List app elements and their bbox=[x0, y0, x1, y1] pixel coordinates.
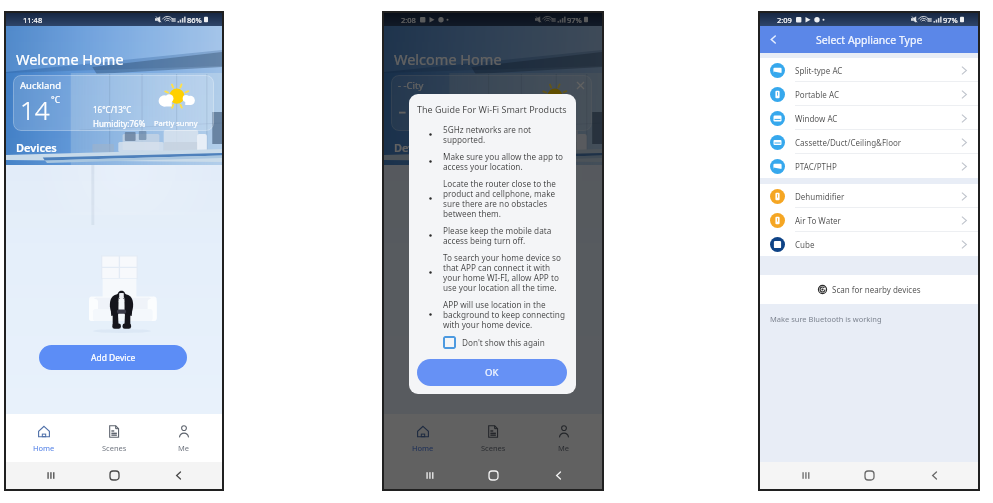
button[interactable]: PTAC/PTHP bbox=[760, 154, 978, 178]
button[interactable]: Scenes bbox=[461, 414, 525, 462]
staticText: Locate the router close to the product a… bbox=[443, 178, 567, 219]
staticText: 16°C/13°C bbox=[93, 104, 132, 115]
staticText: Welcome Home bbox=[394, 49, 502, 69]
button[interactable]: Home bbox=[94, 462, 134, 489]
button[interactable]: Recents bbox=[785, 462, 825, 489]
button[interactable]: Home bbox=[473, 462, 513, 489]
button[interactable]: Split-type AC bbox=[760, 58, 978, 82]
button[interactable]: Back bbox=[914, 462, 954, 489]
button[interactable]: Auckland bbox=[13, 75, 214, 131]
staticText: 2:09 bbox=[777, 15, 792, 25]
button[interactable]: Air To Water bbox=[760, 208, 978, 232]
staticText: 97% bbox=[943, 15, 958, 25]
staticText: Partly sunny bbox=[154, 118, 198, 128]
staticText: Don't show this again bbox=[462, 337, 545, 348]
button[interactable]: Scenes bbox=[82, 414, 146, 462]
button[interactable]: Home bbox=[849, 462, 889, 489]
staticText: The Guide For Wi-Fi Smart Products bbox=[417, 103, 567, 115]
staticText: Window AC bbox=[795, 113, 961, 124]
button[interactable]: Window AC bbox=[760, 106, 978, 130]
staticText: Make sure Bluetooth is working bbox=[770, 314, 882, 324]
staticText: Select Appliance Type bbox=[816, 33, 923, 47]
staticText: Scenes bbox=[481, 443, 506, 453]
staticText: APP will use location in the background … bbox=[443, 299, 567, 330]
button[interactable]: Add Device bbox=[39, 345, 187, 370]
button[interactable]: Don't show this again bbox=[443, 336, 545, 349]
button[interactable]: Me bbox=[532, 414, 596, 462]
staticText: °C bbox=[51, 94, 61, 106]
staticText: - - bbox=[398, 92, 422, 127]
button[interactable]: Me bbox=[152, 414, 216, 462]
staticText: 11:48 bbox=[23, 15, 43, 25]
staticText: Please keep the mobile data access being… bbox=[443, 225, 567, 246]
staticText: OK bbox=[485, 366, 499, 379]
button[interactable]: Back bbox=[158, 462, 198, 489]
staticText: Me bbox=[558, 443, 570, 453]
staticText: Add Device bbox=[469, 352, 514, 364]
staticText: - -City bbox=[398, 79, 424, 92]
button[interactable]: Portable AC bbox=[760, 82, 978, 106]
staticText: Humidity:76% bbox=[93, 118, 146, 129]
staticText: Auckland bbox=[20, 79, 62, 92]
button[interactable]: Back bbox=[763, 26, 783, 53]
staticText: 5GHz networks are not supported. bbox=[443, 124, 567, 145]
staticText: Dehumidifier bbox=[795, 191, 961, 202]
staticText: To search your home device so that APP c… bbox=[443, 252, 567, 293]
button[interactable]: Home bbox=[391, 414, 455, 462]
button[interactable]: - -City bbox=[391, 75, 592, 131]
button[interactable]: Cube bbox=[760, 232, 978, 256]
staticText: Make sure you allow the app to access yo… bbox=[443, 151, 567, 172]
button[interactable]: Add Device bbox=[417, 345, 565, 370]
staticText: Home bbox=[33, 443, 55, 453]
button[interactable]: OK bbox=[417, 359, 567, 386]
staticText: Devices bbox=[16, 140, 57, 155]
staticText: Home bbox=[412, 443, 434, 453]
staticText: 97% bbox=[567, 15, 582, 25]
staticText: Add Device bbox=[91, 352, 136, 364]
staticText: Me bbox=[178, 443, 190, 453]
button[interactable]: Home bbox=[12, 414, 76, 462]
staticText: Cube bbox=[795, 239, 961, 250]
staticText: 2:08 bbox=[401, 15, 416, 25]
staticText: Welcome Home bbox=[16, 49, 124, 69]
button[interactable]: Scan for nearby devices bbox=[760, 275, 978, 304]
button[interactable]: Cassette/Duct/Ceiling&Floor bbox=[760, 130, 978, 154]
button[interactable]: Back bbox=[538, 462, 578, 489]
staticText: Cassette/Duct/Ceiling&Floor bbox=[795, 137, 961, 148]
staticText: Air To Water bbox=[795, 215, 961, 226]
button[interactable]: Recents bbox=[30, 462, 70, 489]
staticText: Portable AC bbox=[795, 89, 961, 100]
staticText: 14 bbox=[20, 92, 50, 127]
button[interactable]: Dehumidifier bbox=[760, 184, 978, 208]
staticText: PTAC/PTHP bbox=[795, 161, 961, 172]
button[interactable]: Recents bbox=[409, 462, 449, 489]
staticText: Split-type AC bbox=[795, 65, 961, 76]
staticText: Scan for nearby devices bbox=[832, 284, 921, 295]
staticText: Scenes bbox=[102, 443, 127, 453]
staticText: Devices bbox=[394, 140, 435, 155]
staticText: 86% bbox=[187, 15, 202, 25]
